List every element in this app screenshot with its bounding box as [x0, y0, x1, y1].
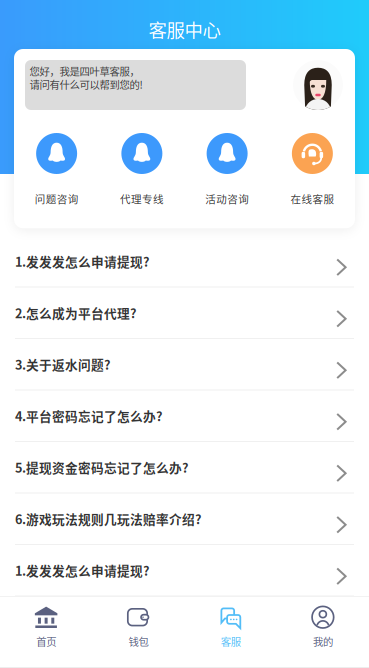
- staticText: 首页: [36, 634, 56, 649]
- staticText: 1.发发发怎么申请提现?: [15, 252, 150, 270]
- staticText: 4.平台密码忘记了怎么办?: [15, 407, 163, 425]
- button[interactable]: 首页: [0, 606, 92, 649]
- button[interactable]: 问题咨询: [14, 133, 99, 206]
- staticText: 钱包: [128, 634, 148, 649]
- button[interactable]: 客服: [184, 606, 277, 649]
- staticText: 客服: [221, 634, 241, 649]
- staticText: 3.关于返水问题?: [15, 355, 111, 373]
- button[interactable]: 1.发发发怎么申请提现?: [0, 236, 369, 287]
- button[interactable]: 6.游戏玩法规则几玩法赔率介绍?: [0, 493, 369, 545]
- staticText: 请问有什么可以帮到您的!: [30, 77, 143, 92]
- button[interactable]: 2.怎么成为平台代理?: [0, 287, 369, 339]
- staticText: 客服中心: [148, 16, 220, 43]
- button[interactable]: 我的: [277, 606, 369, 649]
- button[interactable]: 4.平台密码忘记了怎么办?: [0, 390, 369, 442]
- button[interactable]: 钱包: [92, 606, 184, 649]
- staticText: 1.发发发怎么申请提现?: [15, 561, 150, 579]
- button[interactable]: 活动咨询: [184, 133, 270, 206]
- staticText: 在线客服: [290, 191, 334, 206]
- staticText: 您好，我是四叶草客服，: [30, 63, 140, 78]
- button[interactable]: 3.关于返水问题?: [0, 339, 369, 390]
- staticText: 代理专线: [120, 191, 164, 206]
- button[interactable]: 代理专线: [99, 133, 184, 206]
- staticText: 6.游戏玩法规则几玩法赔率介绍?: [15, 510, 202, 528]
- staticText: 活动咨询: [205, 191, 249, 206]
- staticText: 5.提现资金密码忘记了怎么办?: [15, 458, 189, 476]
- staticText: 我的: [313, 634, 333, 649]
- button[interactable]: 5.提现资金密码忘记了怎么办?: [0, 442, 369, 493]
- button[interactable]: 1.发发发怎么申请提现?: [0, 545, 369, 596]
- button[interactable]: 在线客服: [270, 133, 355, 206]
- staticText: 2.怎么成为平台代理?: [15, 304, 137, 322]
- staticText: 问题咨询: [35, 191, 79, 206]
